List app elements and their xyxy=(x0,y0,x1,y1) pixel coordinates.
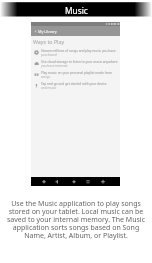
staticText: Music xyxy=(65,5,88,16)
button[interactable]: Tap and go and get started with your dev… xyxy=(31,80,120,91)
button[interactable]: Stream millions of songs and play music … xyxy=(31,47,120,58)
staticText: Tap and go and get started with your dev… xyxy=(41,82,107,86)
button[interactable]: Play music on your personal playlist mad… xyxy=(31,69,120,80)
staticText: Ways to Play xyxy=(33,38,65,45)
staticText: Play music on your personal playlist mad… xyxy=(41,71,118,75)
staticText: Use cloud storage to listen to your musi… xyxy=(41,60,118,64)
staticText: songs xyxy=(41,75,50,79)
button[interactable]: Back xyxy=(31,26,120,36)
staticText: and music xyxy=(41,86,57,90)
staticText: Use the Music application to play songs … xyxy=(5,199,147,240)
button[interactable]: Use cloud storage to listen to your musi… xyxy=(31,58,120,69)
staticText: Stream millions of songs and play music … xyxy=(41,49,116,53)
staticText: My Library xyxy=(38,29,57,34)
staticText: you have internet xyxy=(41,64,68,68)
button[interactable]: System navigation bar xyxy=(31,177,120,186)
staticText: purchased xyxy=(41,53,57,57)
other: Back xyxy=(34,30,37,33)
